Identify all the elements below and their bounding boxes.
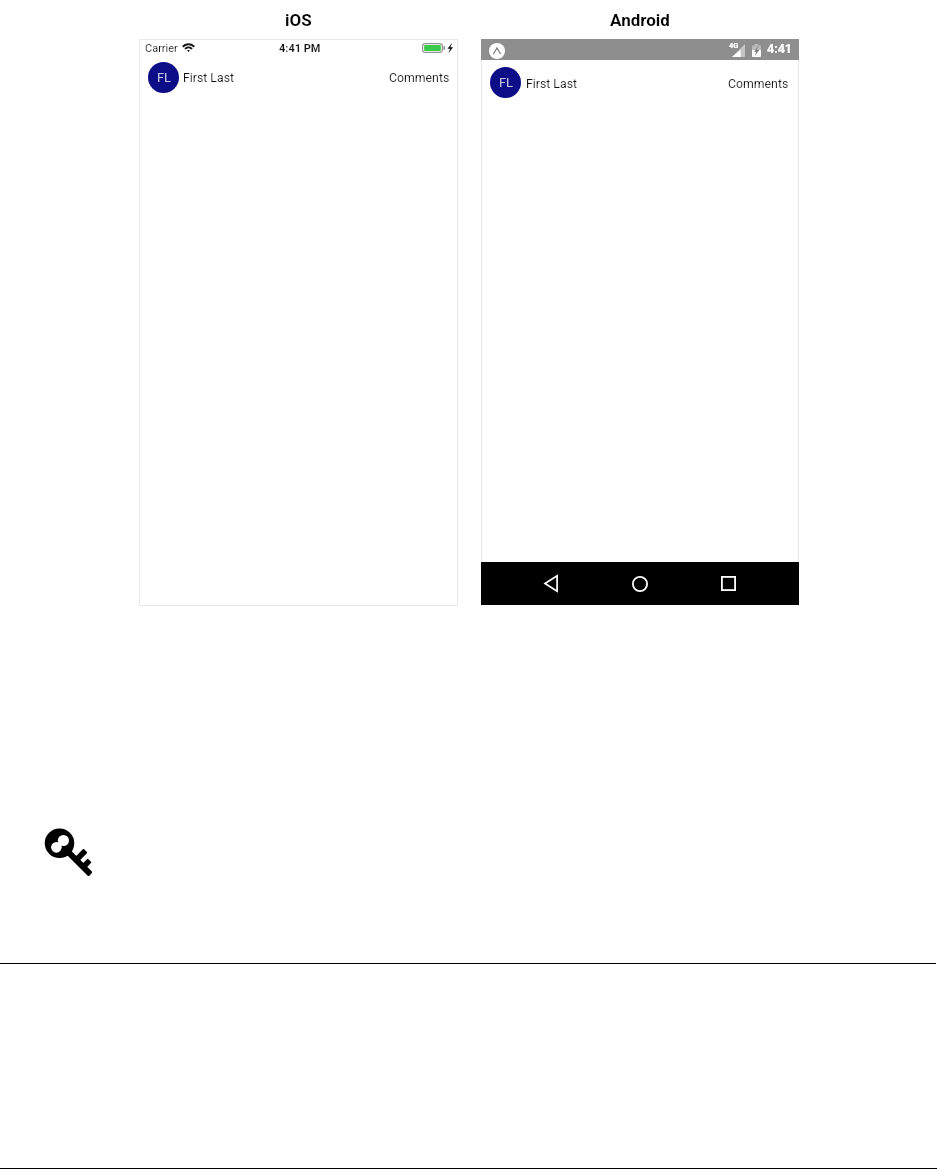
staticText: First Last (183, 71, 235, 85)
button[interactable]: Comments (389, 71, 450, 85)
staticText: Android (610, 10, 670, 30)
staticText: 4:41 PM (279, 42, 321, 55)
staticText: First Last (526, 77, 578, 91)
button[interactable]: Comments (728, 77, 789, 91)
button[interactable]: Home (614, 562, 666, 605)
staticText: 4:41 (767, 41, 793, 56)
button[interactable]: FL (148, 62, 234, 93)
staticText: FL (499, 75, 513, 90)
staticText: Carrier (145, 42, 178, 55)
other: Key (44, 828, 94, 878)
staticText: 4G (729, 41, 739, 50)
button[interactable]: Recents (702, 562, 754, 605)
button[interactable]: FL (490, 67, 577, 98)
staticText: iOS (285, 10, 312, 30)
staticText: Comments (728, 77, 789, 91)
staticText: Comments (389, 71, 450, 85)
button[interactable]: Back (525, 562, 577, 605)
staticText: FL (157, 70, 171, 85)
